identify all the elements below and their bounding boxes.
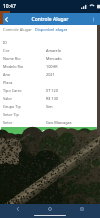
staticText: Controle Alugar [13,16,87,23]
staticText: Modelo Rio [3,64,46,69]
staticText: Sim [46,104,53,109]
button[interactable]: Setor [0,118,100,126]
staticText: ID [3,40,46,45]
button[interactable]: Tipo Carro [0,86,100,94]
staticText: Ano [3,72,46,77]
staticText: Disponível alugar [35,27,68,32]
button[interactable]: Ano [0,70,100,78]
button[interactable]: Modelo Rio [0,62,100,70]
staticText: Setor [3,120,46,125]
staticText: Valor [3,96,46,101]
staticText: Setor Tip [3,112,46,117]
staticText: 100HR [46,64,58,69]
button[interactable]: Back [0,13,13,25]
staticText: Controle Alugar [3,27,32,32]
staticText: 10:47 [3,3,16,10]
button[interactable]: More options [87,13,100,25]
button[interactable]: Home [36,204,64,213]
staticText: Placa [3,80,46,85]
staticText: Geo Marcagas [46,120,72,125]
staticText: Nome Rio [3,56,46,61]
button[interactable]: Nome Rio [0,54,100,62]
button[interactable]: Cor [0,46,100,54]
button[interactable]: Grupo Tip [0,102,100,110]
staticText: Mercado [46,56,62,61]
button[interactable]: Placa [0,78,100,86]
button[interactable]: Setor Tip [0,110,100,118]
staticText: Amarelo [46,48,62,53]
staticText: Grupo Tip [3,104,46,109]
staticText: Cor [3,48,46,53]
button[interactable]: Valor [0,94,100,102]
button[interactable]: Recents [68,204,96,213]
button[interactable]: Back [4,204,32,213]
staticText: Tipo Carro [3,88,46,93]
staticText: R$ 130 [46,96,59,101]
staticText: 2021 [46,72,55,77]
button[interactable]: Confirmar rota [1,127,97,136]
staticText: XT 120 [46,88,58,93]
staticText: Confirmar rota [35,129,64,134]
button[interactable]: ID [0,38,100,46]
